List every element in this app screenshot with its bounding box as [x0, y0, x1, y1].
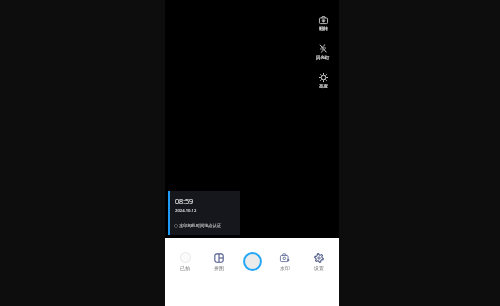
- staticText: 已拍: [180, 265, 190, 271]
- button[interactable]: 拼图: [206, 249, 232, 271]
- staticText: 2024.10.12: [175, 208, 197, 214]
- button[interactable]: Brightness: [312, 70, 334, 90]
- button[interactable]: 水印: [272, 249, 298, 271]
- button[interactable]: Flash: [312, 41, 334, 61]
- button[interactable]: 已拍: [172, 248, 198, 271]
- staticText: 亮度: [319, 84, 328, 90]
- button[interactable]: Flip camera: [312, 13, 334, 32]
- button[interactable]: 设置: [306, 249, 332, 271]
- staticText: 水印相机时间地点认证: [179, 223, 221, 228]
- staticText: 闪光灯: [316, 55, 330, 61]
- staticText: 拼图: [214, 265, 224, 271]
- staticText: 设置: [314, 265, 324, 271]
- staticText: 翻转: [319, 26, 328, 32]
- button[interactable]: Shutter: [243, 252, 262, 271]
- staticText: 水印: [280, 265, 290, 271]
- staticText: 08:59: [175, 196, 194, 206]
